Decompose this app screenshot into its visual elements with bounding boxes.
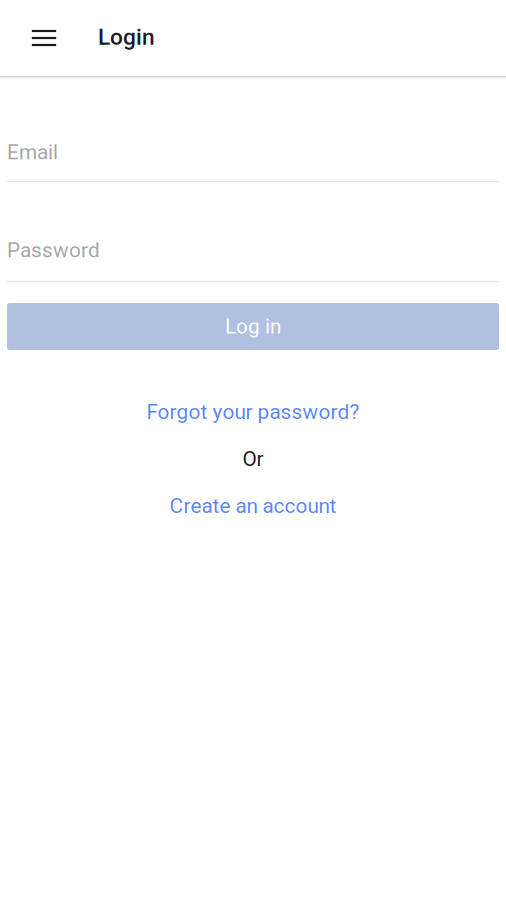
button[interactable]: Create an account bbox=[7, 492, 499, 520]
button[interactable]: Email bbox=[7, 140, 499, 182]
button[interactable]: Log in bbox=[7, 303, 499, 350]
staticText: Log in bbox=[225, 314, 281, 339]
button[interactable]: Menu bbox=[16, 8, 72, 68]
staticText: Forgot your password? bbox=[146, 400, 359, 424]
staticText: Password bbox=[7, 238, 100, 262]
staticText: Email bbox=[7, 140, 58, 164]
staticText: Login bbox=[98, 24, 155, 50]
staticText: Create an account bbox=[169, 494, 336, 518]
button[interactable]: Password bbox=[7, 238, 499, 282]
staticText: Or bbox=[242, 447, 263, 471]
button[interactable]: Forgot your password? bbox=[7, 398, 499, 426]
